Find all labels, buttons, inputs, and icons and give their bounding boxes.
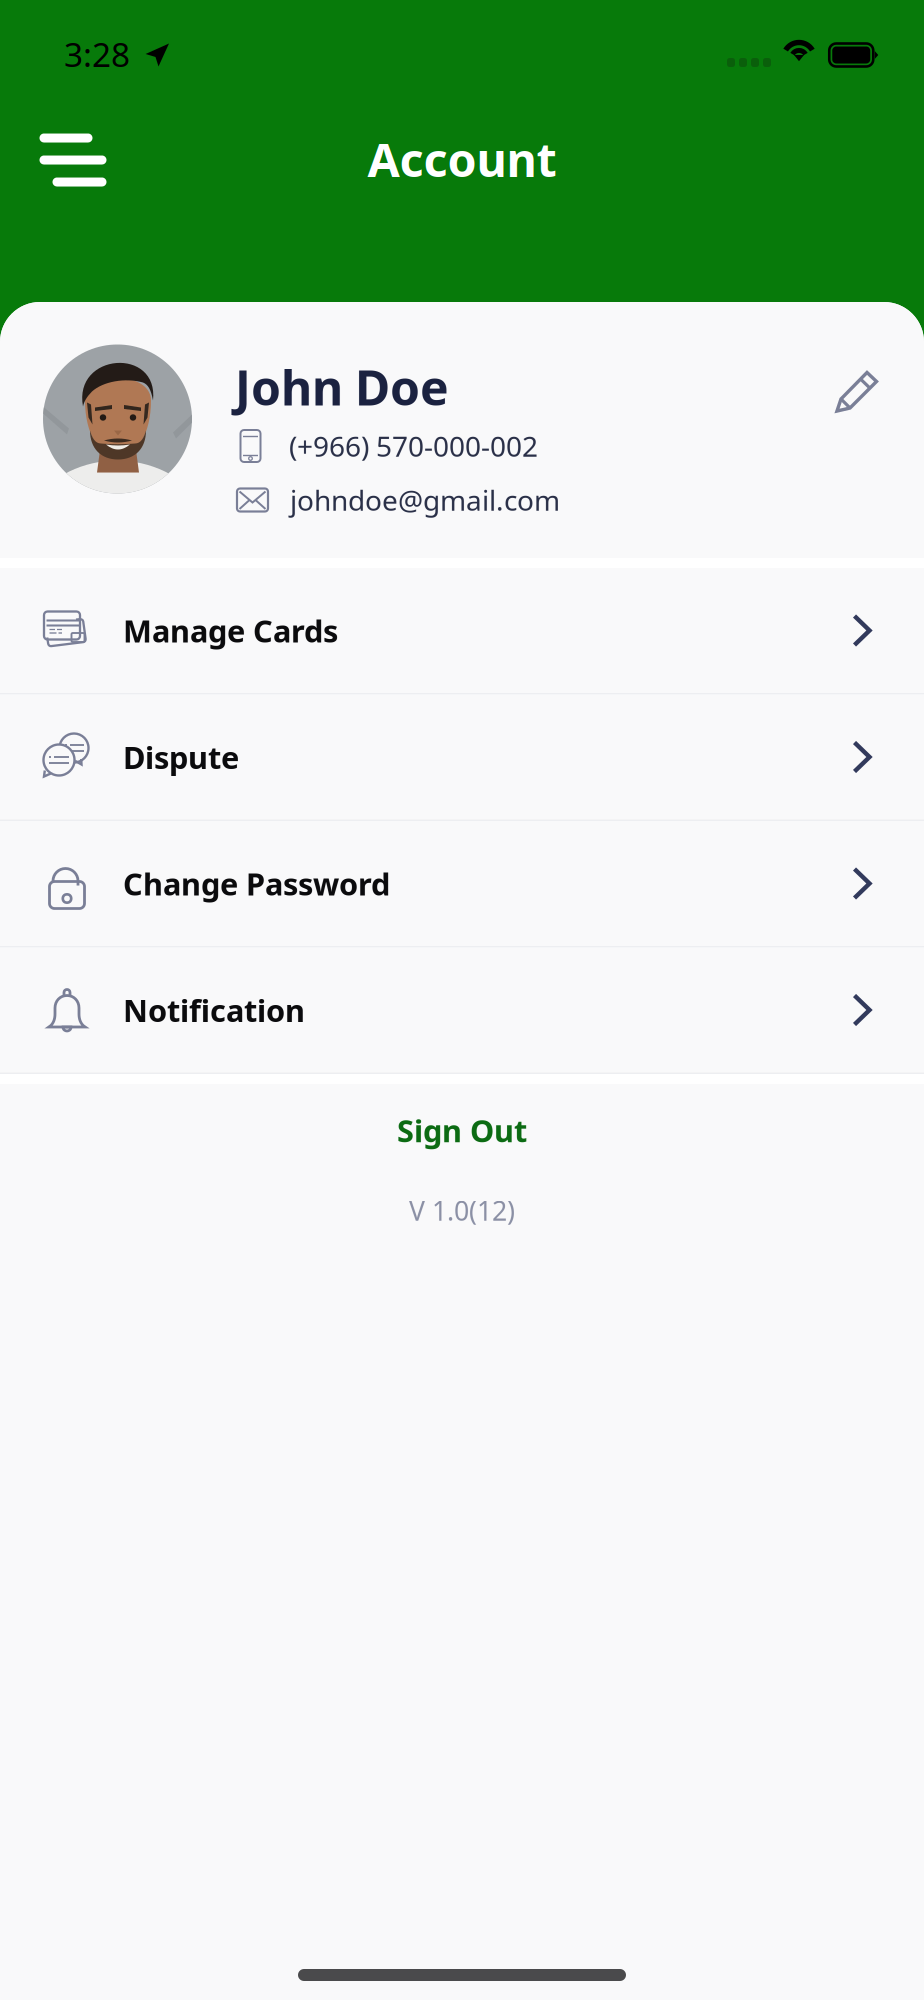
button[interactable]: Manage Cards xyxy=(0,568,924,693)
staticText: Notification xyxy=(123,990,305,1030)
staticText: John Doe xyxy=(235,355,449,419)
button[interactable]: Change Password xyxy=(0,821,924,946)
staticText: Sign Out xyxy=(397,1110,527,1151)
staticText: 3:28 xyxy=(64,32,130,76)
button[interactable]: Edit profile xyxy=(823,355,891,427)
staticText: V 1.0(12) xyxy=(409,1193,515,1228)
button[interactable]: Dispute xyxy=(0,694,924,819)
button[interactable]: Sign Out xyxy=(0,1084,924,1165)
staticText: Dispute xyxy=(123,737,239,777)
staticText: Manage Cards xyxy=(123,610,338,651)
button[interactable]: Notification xyxy=(0,947,924,1072)
staticText: (+966) 570-000-002 xyxy=(289,427,538,465)
staticText: Account xyxy=(367,128,556,190)
staticText: Change Password xyxy=(123,863,390,904)
button[interactable]: Menu xyxy=(15,113,130,206)
staticText: johndoe@gmail.com xyxy=(290,481,560,519)
